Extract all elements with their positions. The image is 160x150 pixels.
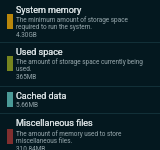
button[interactable] bbox=[0, 86, 160, 113]
staticText: The amount of storage space currently be… bbox=[16, 58, 156, 66]
staticText: 310.84MB bbox=[16, 145, 46, 150]
staticText: Used space bbox=[16, 47, 63, 58]
button[interactable] bbox=[0, 0, 160, 41]
button[interactable] bbox=[0, 114, 160, 150]
staticText: miscellaneous files. bbox=[16, 137, 156, 145]
staticText: used. bbox=[16, 65, 156, 73]
staticText: Cached data bbox=[16, 91, 67, 102]
staticText: The amount of memory used to store bbox=[16, 130, 156, 138]
button[interactable] bbox=[0, 42, 160, 85]
staticText: System memory bbox=[16, 5, 82, 16]
staticText: 365MB bbox=[16, 73, 37, 81]
staticText: 4.30GB bbox=[16, 31, 37, 39]
staticText: required to run the system. bbox=[16, 23, 156, 31]
staticText: Miscellaneous files bbox=[16, 118, 93, 129]
staticText: 5.66MB bbox=[16, 101, 39, 109]
staticText: The minimum amount of storage space bbox=[16, 16, 156, 24]
